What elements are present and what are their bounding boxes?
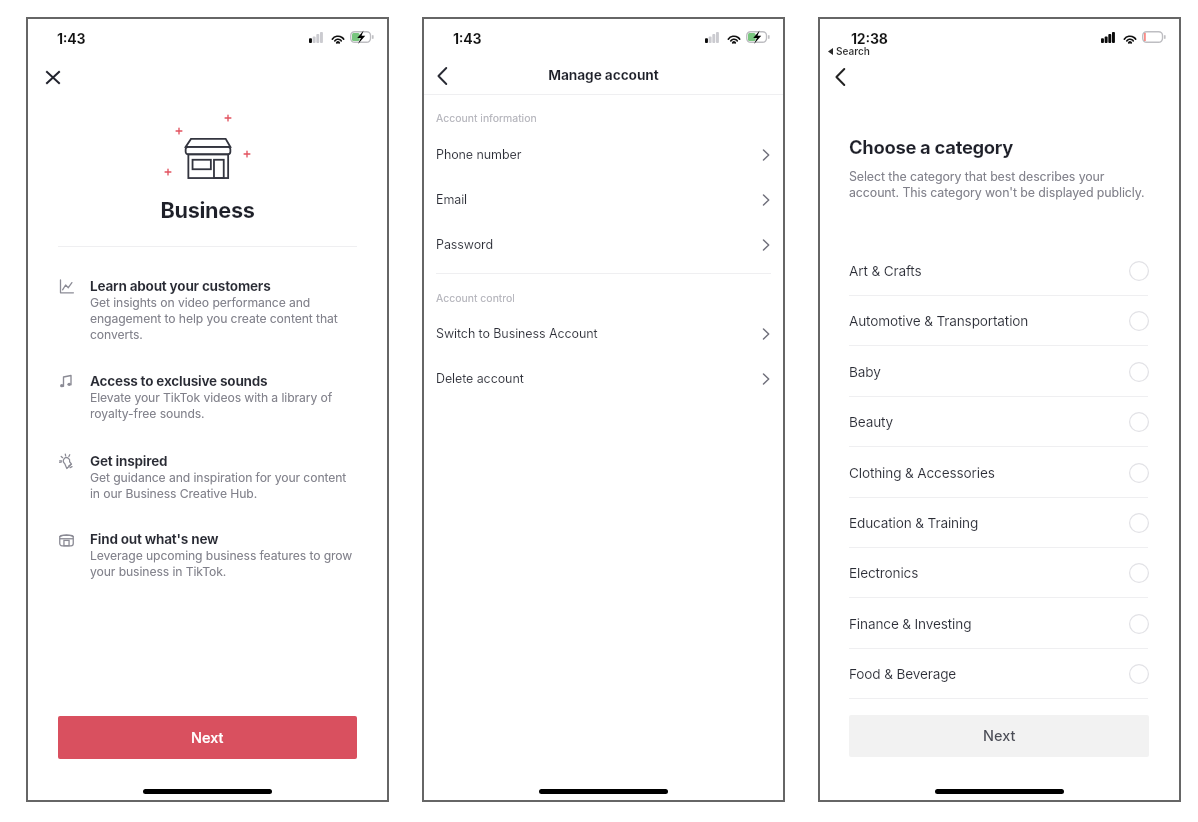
button[interactable]: Education & Training: [818, 498, 1181, 548]
staticText: Find out what's new: [90, 531, 219, 547]
staticText: Electronics: [849, 565, 919, 581]
staticText: Elevate your TikTok videos with a librar…: [90, 390, 358, 421]
button[interactable]: Gaming: [818, 700, 1181, 750]
staticText: Beauty: [849, 414, 894, 430]
button[interactable]: Clothing & Accessories: [818, 448, 1181, 498]
staticText: Password: [436, 237, 494, 252]
staticText: Manage account: [422, 67, 785, 84]
staticText: Phone number: [436, 147, 522, 162]
staticText: Next: [191, 729, 224, 747]
button[interactable]: Phone number: [422, 132, 785, 177]
staticText: Email: [436, 192, 468, 207]
staticText: Baby: [849, 364, 881, 380]
staticText: Select the category that best describes …: [849, 169, 1149, 200]
button[interactable]: Email: [422, 177, 785, 222]
button[interactable]: Next: [58, 716, 357, 759]
button[interactable]: Password: [422, 222, 785, 267]
staticText: 12:38: [851, 30, 888, 47]
staticText: Account control: [436, 292, 515, 305]
staticText: Account information: [436, 112, 537, 125]
button[interactable]: Delete account: [422, 356, 785, 401]
button[interactable]: Art & Crafts: [818, 246, 1181, 296]
staticText: Access to exclusive sounds: [90, 373, 268, 389]
staticText: Choose a category: [849, 136, 1014, 158]
staticText: Art & Crafts: [849, 263, 922, 279]
staticText: Education & Training: [849, 515, 979, 531]
button[interactable]: Baby: [818, 347, 1181, 397]
staticText: Delete account: [436, 371, 524, 386]
staticText: Search: [836, 45, 870, 57]
staticText: Finance & Investing: [849, 616, 972, 632]
button[interactable]: Back: [422, 55, 463, 97]
button[interactable]: Close: [31, 55, 75, 99]
button[interactable]: Beauty: [818, 397, 1181, 447]
staticText: Leverage upcoming business features to g…: [90, 548, 358, 579]
staticText: Next: [983, 727, 1016, 745]
staticText: 1:43: [57, 30, 86, 47]
staticText: Food & Beverage: [849, 666, 957, 682]
button[interactable]: Food & Beverage: [818, 649, 1181, 699]
staticText: Get inspired: [90, 453, 168, 469]
staticText: Get insights on video performance and en…: [90, 295, 358, 342]
button[interactable]: Electronics: [818, 548, 1181, 598]
button[interactable]: Switch to Business Account: [422, 311, 785, 356]
staticText: Automotive & Transportation: [849, 313, 1029, 329]
staticText: Clothing & Accessories: [849, 465, 995, 481]
staticText: 1:43: [453, 30, 482, 47]
staticText: Business: [26, 197, 389, 223]
button[interactable]: Back: [819, 56, 861, 98]
button[interactable]: Automotive & Transportation: [818, 296, 1181, 346]
staticText: Learn about your customers: [90, 278, 271, 294]
staticText: Switch to Business Account: [436, 326, 598, 341]
button[interactable]: Finance & Investing: [818, 599, 1181, 649]
button[interactable]: Next: [849, 715, 1149, 757]
staticText: Get guidance and inspiration for your co…: [90, 470, 358, 501]
